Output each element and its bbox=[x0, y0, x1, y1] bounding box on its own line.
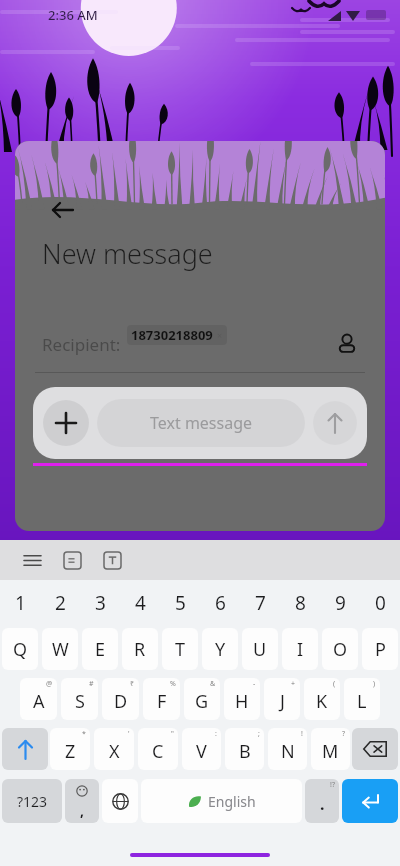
button[interactable]: @ bbox=[20, 678, 57, 720]
staticText: K bbox=[316, 689, 328, 714]
staticText: Recipient: bbox=[42, 333, 121, 356]
staticText: V bbox=[196, 739, 207, 764]
staticText: B bbox=[239, 739, 251, 764]
staticText: M bbox=[322, 739, 339, 764]
button[interactable]: ' bbox=[94, 728, 134, 770]
staticText: ; bbox=[258, 729, 260, 739]
staticText: 7 bbox=[255, 590, 266, 616]
button[interactable]: Text message bbox=[97, 399, 305, 447]
button[interactable]: 1 bbox=[0, 580, 40, 626]
staticText: New message bbox=[42, 235, 213, 272]
staticText: Q bbox=[13, 637, 28, 662]
staticText: - bbox=[253, 679, 256, 689]
staticText: # bbox=[89, 679, 94, 689]
button[interactable]: I bbox=[282, 628, 318, 670]
staticText: + bbox=[291, 679, 296, 689]
staticText: 2 bbox=[55, 590, 66, 616]
staticText: 0 bbox=[375, 590, 386, 616]
button[interactable]: 3 bbox=[80, 580, 120, 626]
button[interactable]: ; bbox=[225, 728, 264, 770]
staticText: English bbox=[208, 792, 256, 811]
button[interactable]: !? bbox=[305, 779, 339, 823]
staticText: " bbox=[171, 729, 174, 739]
button[interactable]: Shift bbox=[2, 728, 48, 770]
button[interactable]: 8 bbox=[280, 580, 320, 626]
button[interactable]: Choose contact bbox=[325, 322, 369, 366]
button[interactable]: ?123 bbox=[2, 779, 62, 823]
button[interactable]: % bbox=[143, 678, 180, 720]
button[interactable]: U bbox=[242, 628, 278, 670]
button[interactable]: R bbox=[122, 628, 158, 670]
staticText: ( bbox=[333, 679, 336, 689]
staticText: T bbox=[175, 637, 186, 662]
staticText: C bbox=[152, 739, 164, 764]
button[interactable]: W bbox=[42, 628, 78, 670]
staticText: D bbox=[114, 689, 128, 714]
button[interactable]: 7 bbox=[240, 580, 280, 626]
button[interactable]: ₹ bbox=[102, 678, 139, 720]
button[interactable]: Send bbox=[313, 401, 357, 445]
button[interactable]: E bbox=[82, 628, 118, 670]
button[interactable]: 4 bbox=[120, 580, 160, 626]
button[interactable]: 9 bbox=[320, 580, 360, 626]
button[interactable]: Menu bbox=[18, 546, 46, 574]
button[interactable]: Back bbox=[43, 191, 81, 229]
staticText: . bbox=[320, 793, 325, 815]
button[interactable]: Recipient: bbox=[15, 316, 385, 372]
staticText: Y bbox=[215, 637, 226, 662]
button[interactable]: & bbox=[184, 678, 220, 720]
button[interactable]: Emoji bbox=[65, 779, 99, 823]
button[interactable]: Add attachment bbox=[43, 400, 89, 446]
button[interactable]: : bbox=[182, 728, 221, 770]
button[interactable]: * bbox=[50, 728, 90, 770]
staticText: ₹ bbox=[130, 679, 135, 689]
button[interactable]: Q bbox=[2, 628, 38, 670]
button[interactable]: 5 bbox=[160, 580, 200, 626]
staticText: G bbox=[195, 689, 209, 714]
button[interactable]: 6 bbox=[200, 580, 240, 626]
button[interactable]: # bbox=[61, 678, 98, 720]
staticText: I bbox=[297, 637, 304, 662]
staticText: 3 bbox=[95, 590, 106, 616]
button[interactable]: + bbox=[264, 678, 300, 720]
button[interactable]: 0 bbox=[360, 580, 400, 626]
button[interactable]: Change language bbox=[102, 779, 138, 823]
button[interactable]: P bbox=[362, 628, 398, 670]
button[interactable]: ) bbox=[344, 678, 380, 720]
staticText: E bbox=[95, 637, 106, 662]
staticText: O bbox=[333, 637, 348, 662]
staticText: J bbox=[280, 689, 285, 714]
button[interactable]: Text editing bbox=[98, 546, 126, 574]
button[interactable]: ! bbox=[268, 728, 307, 770]
staticText: 18730218809 bbox=[131, 326, 213, 344]
button[interactable]: " bbox=[138, 728, 178, 770]
button[interactable]: 2 bbox=[40, 580, 80, 626]
button[interactable]: Y bbox=[202, 628, 238, 670]
staticText: : bbox=[215, 729, 217, 739]
button[interactable]: Enter bbox=[342, 779, 398, 823]
button[interactable]: - bbox=[224, 678, 260, 720]
staticText: ! bbox=[301, 729, 303, 739]
button[interactable]: T bbox=[162, 628, 198, 670]
staticText: U bbox=[253, 637, 267, 662]
staticText: % bbox=[170, 679, 176, 689]
staticText: H bbox=[235, 689, 249, 714]
staticText: N bbox=[281, 739, 295, 764]
staticText: F bbox=[157, 689, 167, 714]
staticText: R bbox=[134, 637, 146, 662]
button[interactable]: ( bbox=[304, 678, 340, 720]
staticText: ?123 bbox=[17, 792, 48, 811]
button[interactable]: Clipboard bbox=[58, 546, 86, 574]
staticText: ? bbox=[342, 729, 346, 739]
staticText: 9 bbox=[335, 590, 346, 616]
button[interactable]: O bbox=[322, 628, 358, 670]
button[interactable]: Backspace bbox=[352, 728, 398, 770]
staticText: L bbox=[357, 689, 367, 714]
button[interactable]: ? bbox=[311, 728, 350, 770]
staticText: !? bbox=[330, 780, 335, 790]
staticText: 1 bbox=[15, 590, 26, 616]
staticText: & bbox=[210, 679, 216, 689]
staticText: X bbox=[109, 739, 120, 764]
button[interactable]: English bbox=[141, 779, 302, 823]
staticText: ) bbox=[373, 679, 376, 689]
